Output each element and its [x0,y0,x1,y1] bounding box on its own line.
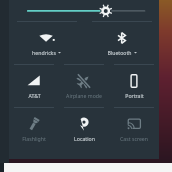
button[interactable]: Portrait [109,64,159,107]
button[interactable]: Bluetooth [84,21,159,64]
staticText: Bluetooth [107,49,132,56]
staticText: Location [74,135,95,142]
button[interactable]: Location [59,107,109,150]
staticText: Flashlight [22,135,46,142]
button[interactable]: Airplane mode [59,64,109,107]
button[interactable]: Brightness slider [9,0,159,21]
staticText: Cast screen [120,135,148,142]
button[interactable]: AT&T [9,64,59,107]
button[interactable]: Cast screen [109,107,159,150]
button[interactable]: hendricks [9,21,84,64]
staticText: AT&T [28,92,41,99]
staticText: hendricks [32,49,56,56]
staticText: Portrait [125,92,144,99]
staticText: Airplane mode [66,92,102,99]
button[interactable]: Flashlight [9,107,59,150]
